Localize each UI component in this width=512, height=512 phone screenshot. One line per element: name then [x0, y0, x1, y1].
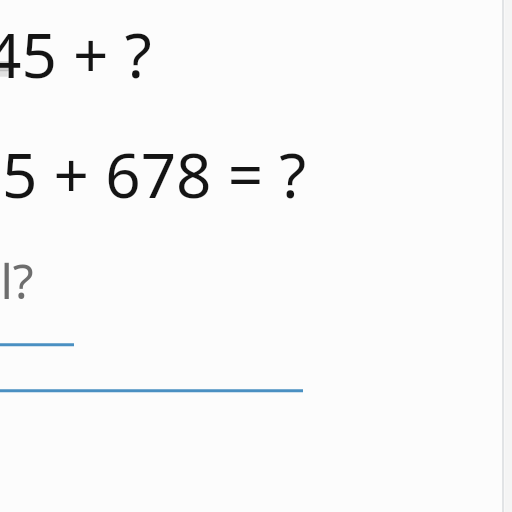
button[interactable]: 5 + 678 = ?	[2, 128, 362, 212]
button[interactable]: Link	[0, 336, 74, 352]
button[interactable]: Link	[0, 382, 303, 398]
staticText: 45 + ?	[0, 12, 152, 96]
staticText: ll?	[0, 248, 34, 312]
button[interactable]: ll?	[0, 246, 138, 310]
staticText: 5 + 678 = ?	[2, 132, 307, 216]
button[interactable]: 45 + ?	[0, 8, 246, 92]
